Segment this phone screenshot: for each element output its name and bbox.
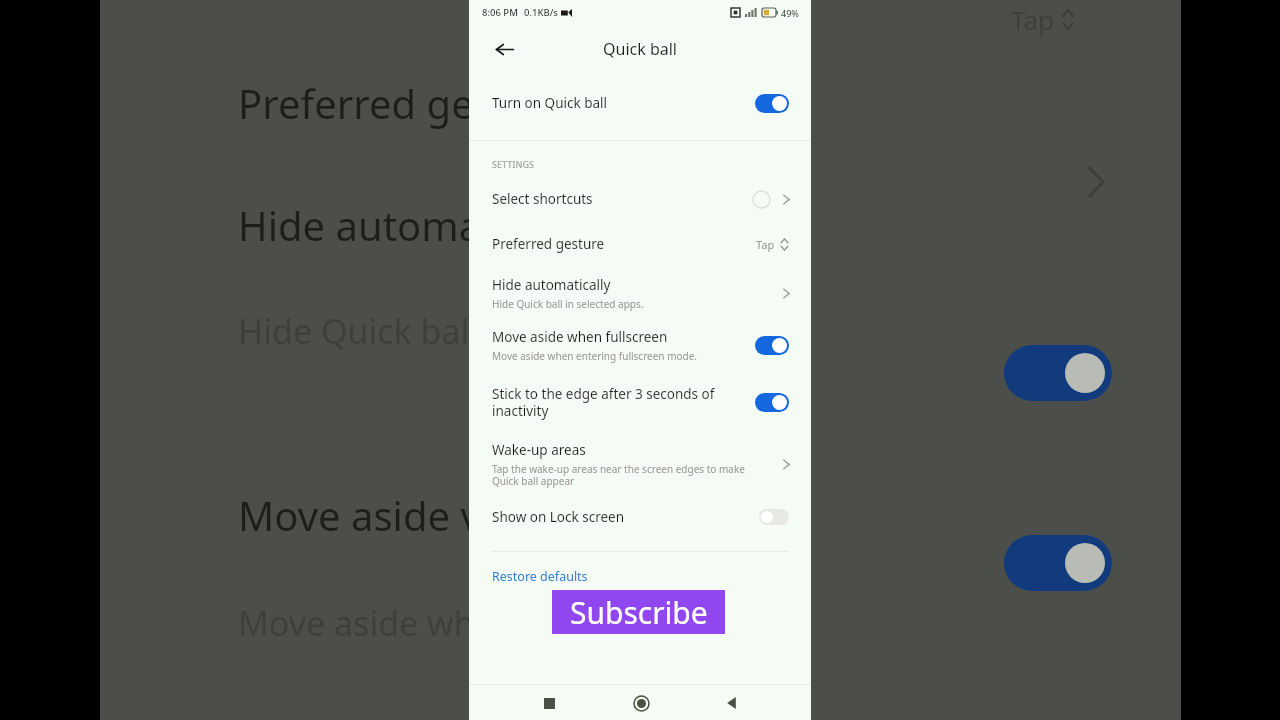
staticText: Move aside whe xyxy=(238,600,494,646)
button[interactable]: Toggle on xyxy=(755,393,789,412)
staticText: Wake-up areas xyxy=(492,441,586,459)
staticText: Hide automa xyxy=(238,198,482,252)
staticText: Select shortcuts xyxy=(492,190,593,208)
staticText: 0.1KB/s xyxy=(524,6,558,19)
button[interactable]: Home xyxy=(627,689,655,717)
staticText: Preferred gesture xyxy=(492,235,605,253)
staticText: SETTINGS xyxy=(492,158,534,170)
staticText: Tap the wake-up areas near the screen ed… xyxy=(492,462,770,488)
staticText: Move aside when entering fullscreen mode… xyxy=(492,349,698,363)
button[interactable]: Select shortcuts xyxy=(469,177,811,221)
staticText: Restore defaults xyxy=(492,568,588,585)
staticText: Quick ball xyxy=(603,38,677,60)
button[interactable]: Wake-up areas xyxy=(469,433,811,495)
staticText: Hide automatically xyxy=(492,276,611,294)
staticText: Hide Quick ball in selected apps. xyxy=(492,297,644,311)
button[interactable]: Recents xyxy=(535,689,563,717)
button[interactable]: Hide automatically xyxy=(469,267,811,319)
staticText: Move aside v xyxy=(238,488,481,542)
staticText: Stick to the edge after 3 seconds of ina… xyxy=(492,385,741,420)
staticText: Preferred ge xyxy=(238,76,474,130)
button[interactable]: Toggle off xyxy=(759,509,789,525)
staticText: Turn on Quick ball xyxy=(492,94,608,112)
button[interactable]: Show on Lock screen xyxy=(469,495,811,539)
staticText: Tap xyxy=(756,237,775,252)
button[interactable]: Restore defaults xyxy=(469,552,811,600)
button[interactable]: Back xyxy=(718,689,746,717)
staticText: Move aside when fullscreen xyxy=(492,328,668,346)
staticText: Tap xyxy=(1011,2,1054,37)
button[interactable]: Move aside when fullscreen xyxy=(469,319,811,371)
staticText: 49% xyxy=(781,7,799,19)
button[interactable]: Back xyxy=(487,32,521,66)
button[interactable]: Stick to the edge after 3 seconds of ina… xyxy=(469,371,811,433)
staticText: Subscribe xyxy=(570,592,708,633)
button[interactable]: Turn on Quick ball xyxy=(469,72,811,134)
button[interactable]: Toggle on xyxy=(755,336,789,355)
button[interactable]: Toggle on xyxy=(755,94,789,113)
button[interactable]: Preferred gesture xyxy=(469,221,811,267)
staticText: Show on Lock screen xyxy=(492,508,625,526)
staticText: Hide Quick ball xyxy=(238,308,479,354)
button[interactable]: Subscribe xyxy=(552,590,725,634)
staticText: 8:06 PM xyxy=(482,6,518,19)
